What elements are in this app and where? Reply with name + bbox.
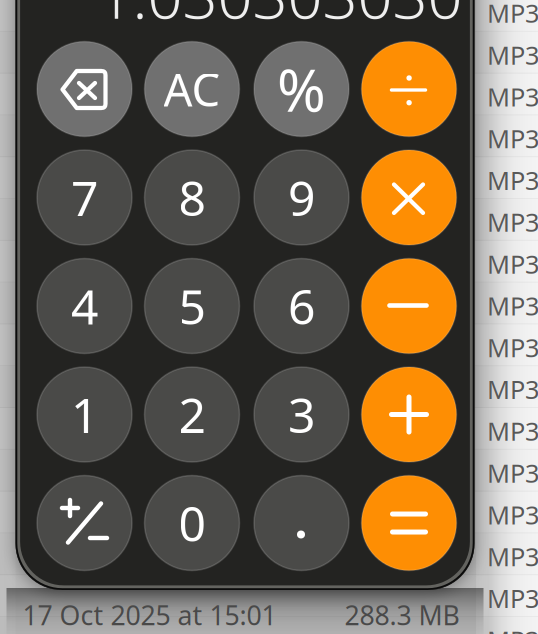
- button[interactable]: 7: [37, 150, 132, 245]
- staticText: 2: [178, 383, 205, 446]
- button[interactable]: 9: [254, 150, 349, 245]
- staticText: MP3: [487, 247, 538, 281]
- staticText: 8: [178, 166, 205, 229]
- button[interactable]: AC: [144, 41, 239, 136]
- staticText: MP3: [487, 163, 538, 197]
- staticText: 1: [71, 383, 98, 446]
- button[interactable]: Delete: [37, 41, 132, 136]
- button[interactable]: 3: [254, 367, 349, 462]
- button[interactable]: 6: [254, 258, 349, 353]
- staticText: MP3: [487, 122, 538, 155]
- button[interactable]: Decimal point: [254, 475, 349, 570]
- staticText: MP3: [487, 581, 538, 615]
- staticText: MP3: [487, 540, 538, 573]
- staticText: MP3: [487, 331, 538, 364]
- staticText: MP3: [487, 38, 538, 72]
- staticText: 9: [288, 166, 315, 229]
- button[interactable]: Plus or minus: [37, 475, 132, 570]
- staticText: 17 Oct 2025 at 15:01: [22, 597, 276, 633]
- staticText: MP3: [487, 0, 538, 30]
- staticText: MP3: [487, 289, 538, 322]
- staticText: 3: [288, 383, 315, 446]
- button[interactable]: Minus: [361, 258, 456, 353]
- button[interactable]: Multiply: [361, 150, 456, 245]
- staticText: 4: [71, 274, 98, 338]
- button[interactable]: 4: [37, 258, 132, 353]
- staticText: 0: [178, 491, 205, 555]
- staticText: MP3: [487, 80, 538, 113]
- staticText: 5: [178, 274, 205, 338]
- staticText: AC: [163, 59, 220, 119]
- button[interactable]: Equals: [361, 475, 456, 570]
- staticText: 1.030303030: [97, 0, 462, 36]
- staticText: MP3: [487, 205, 538, 239]
- staticText: MP3: [487, 498, 538, 531]
- staticText: 7: [71, 166, 98, 229]
- button[interactable]: 0: [144, 475, 239, 570]
- button[interactable]: 5: [144, 258, 239, 353]
- staticText: MP3: [487, 456, 538, 490]
- button[interactable]: Plus: [361, 367, 456, 462]
- staticText: 288.3 MB: [344, 597, 459, 633]
- staticText: MP3: [487, 414, 538, 448]
- button[interactable]: %: [254, 41, 349, 136]
- button[interactable]: Divide: [361, 41, 456, 136]
- staticText: MP3: [487, 623, 538, 634]
- staticText: %: [277, 50, 326, 128]
- staticText: 6: [288, 274, 315, 338]
- staticText: MP3: [487, 372, 538, 406]
- button[interactable]: 8: [144, 150, 239, 245]
- button[interactable]: 1: [37, 367, 132, 462]
- button[interactable]: 2: [144, 367, 239, 462]
